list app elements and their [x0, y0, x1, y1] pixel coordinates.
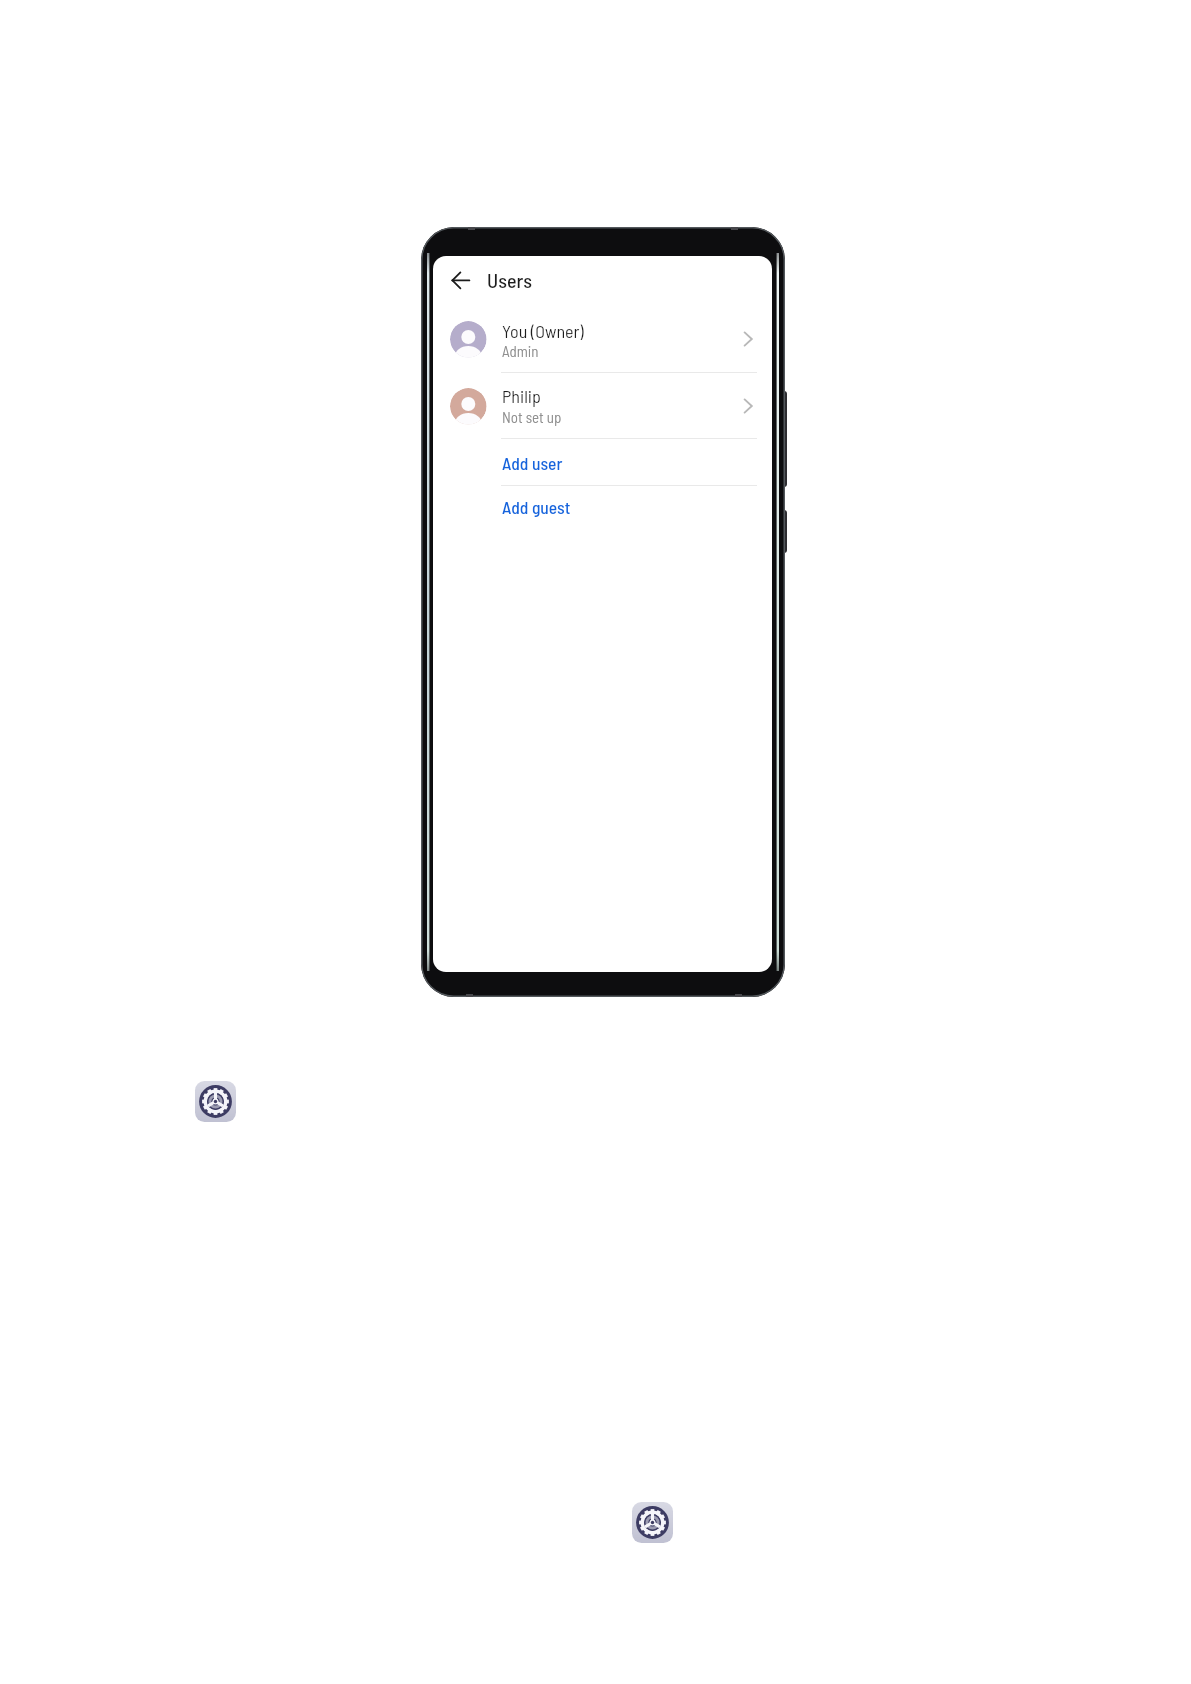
button[interactable]: You (Owner) — [433, 304, 772, 372]
staticText: Add user — [502, 452, 563, 473]
button[interactable] — [632, 1502, 673, 1543]
staticText: You (Owner) — [502, 320, 584, 342]
button[interactable] — [441, 260, 483, 300]
staticText: Philip — [502, 385, 541, 407]
button[interactable]: Add guest — [433, 486, 772, 532]
button[interactable]: Philip — [433, 373, 772, 439]
staticText: Admin — [502, 342, 539, 360]
staticText: Not set up — [502, 408, 562, 426]
button[interactable]: Add user — [433, 439, 772, 485]
button[interactable] — [195, 1081, 236, 1122]
staticText: Users — [487, 268, 532, 292]
staticText: Add guest — [502, 496, 571, 517]
